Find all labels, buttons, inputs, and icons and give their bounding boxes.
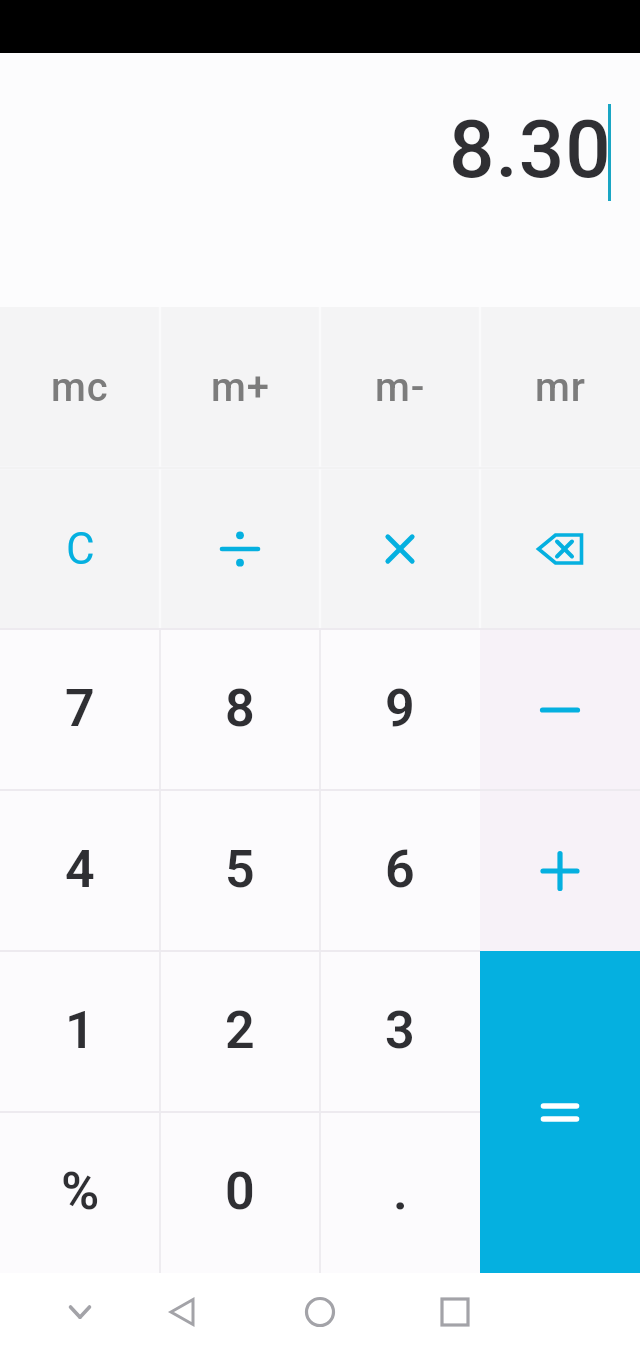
- staticText: mr: [535, 364, 586, 411]
- button[interactable]: Recents: [425, 1273, 485, 1351]
- staticText: 5: [225, 839, 255, 900]
- staticText: 2: [225, 1000, 255, 1061]
- button[interactable]: m+: [160, 307, 320, 468]
- button[interactable]: Multiply: [320, 468, 480, 629]
- button[interactable]: m-: [320, 307, 480, 468]
- staticText: mc: [51, 364, 109, 411]
- staticText: m+: [211, 364, 270, 411]
- button[interactable]: 7: [0, 629, 160, 790]
- button[interactable]: Equals: [480, 951, 640, 1273]
- staticText: 4: [65, 839, 95, 900]
- button[interactable]: .: [320, 1112, 480, 1273]
- staticText: %: [61, 1161, 100, 1222]
- staticText: 8.30: [449, 103, 612, 197]
- button[interactable]: 4: [0, 790, 160, 951]
- button[interactable]: 9: [320, 629, 480, 790]
- button[interactable]: Backspace: [480, 468, 640, 629]
- button[interactable]: Divide: [160, 468, 320, 629]
- staticText: 3: [385, 1000, 415, 1061]
- staticText: 7: [65, 678, 95, 739]
- button[interactable]: Back: [152, 1273, 212, 1351]
- button[interactable]: 2: [160, 951, 320, 1112]
- button[interactable]: 8: [160, 629, 320, 790]
- staticText: 9: [385, 678, 415, 739]
- button[interactable]: 5: [160, 790, 320, 951]
- button[interactable]: mc: [0, 307, 160, 468]
- button[interactable]: 3: [320, 951, 480, 1112]
- button[interactable]: Plus: [480, 790, 640, 951]
- button[interactable]: C: [0, 468, 160, 629]
- staticText: 1: [65, 1000, 95, 1061]
- staticText: 6: [385, 839, 415, 900]
- staticText: 0: [225, 1161, 255, 1222]
- button[interactable]: %: [0, 1112, 160, 1273]
- button[interactable]: Hide keyboard: [50, 1273, 110, 1351]
- button[interactable]: 1: [0, 951, 160, 1112]
- staticText: .: [393, 1161, 408, 1222]
- staticText: m-: [375, 364, 426, 411]
- button[interactable]: 0: [160, 1112, 320, 1273]
- button[interactable]: 6: [320, 790, 480, 951]
- button[interactable]: Home: [290, 1273, 350, 1351]
- button[interactable]: Minus: [480, 629, 640, 790]
- staticText: C: [66, 523, 95, 575]
- button[interactable]: mr: [480, 307, 640, 468]
- staticText: 8: [225, 678, 255, 739]
